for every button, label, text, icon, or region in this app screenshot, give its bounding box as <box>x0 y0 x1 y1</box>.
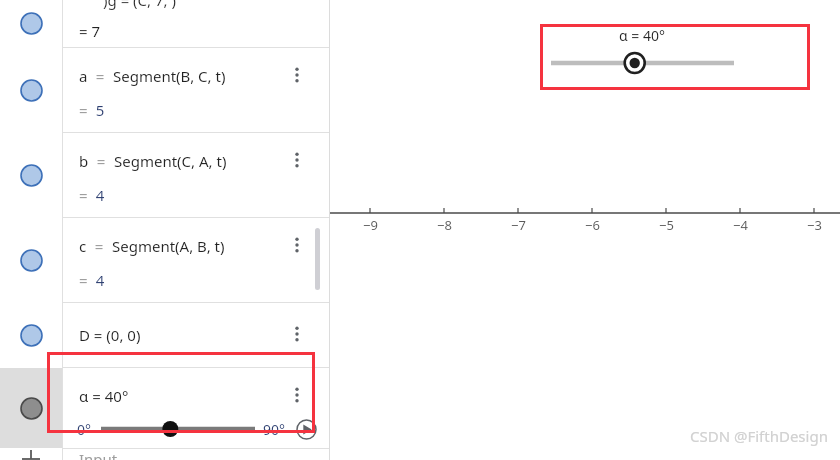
staticText: = 7 <box>79 21 101 41</box>
other: Add <box>0 449 62 460</box>
staticText: 4 <box>88 270 105 290</box>
button[interactable]: Toggle visibility <box>0 48 62 132</box>
staticText: D = (0, 0) <box>79 325 141 345</box>
staticText: = <box>87 236 112 256</box>
staticText: Segment(B, C, t) <box>113 66 226 86</box>
staticText: CSDN @FifthDesign <box>690 426 828 446</box>
staticText: 4 <box>88 185 105 205</box>
staticText: Input... <box>79 449 130 460</box>
staticText: )g = (C, 7, ) <box>103 0 177 10</box>
button[interactable]: Toggle visibility <box>0 133 62 217</box>
staticText: −8 <box>437 216 452 234</box>
staticText: −6 <box>585 216 600 234</box>
staticText: Segment(C, A, t) <box>114 151 227 171</box>
staticText: Segment(A, B, t) <box>112 236 225 256</box>
staticText: −5 <box>659 216 674 234</box>
button[interactable]: Toggle visibility <box>0 0 62 47</box>
staticText: −4 <box>733 216 748 234</box>
button[interactable]: More options <box>284 62 310 88</box>
staticText: = <box>79 270 88 290</box>
staticText: = <box>79 185 88 205</box>
staticText: 90° <box>263 420 286 439</box>
staticText: −9 <box>363 216 378 234</box>
button[interactable]: More options <box>284 321 310 347</box>
staticText: c <box>79 236 87 256</box>
button[interactable]: More options <box>284 147 310 173</box>
button[interactable]: More options <box>284 382 310 408</box>
button[interactable]: More options <box>284 232 310 258</box>
button[interactable]: Toggle visibility <box>0 218 62 302</box>
staticText: = <box>79 100 88 120</box>
staticText: −3 <box>807 216 822 234</box>
button[interactable]: Toggle visibility <box>0 368 62 448</box>
button[interactable]: Play animation <box>294 417 318 441</box>
staticText: = <box>89 151 114 171</box>
staticText: = <box>88 66 113 86</box>
staticText: a <box>79 66 88 86</box>
staticText: b <box>79 151 89 171</box>
button[interactable]: Add <box>0 449 330 460</box>
staticText: 5 <box>88 100 105 120</box>
button[interactable]: Toggle visibility <box>0 303 62 367</box>
staticText: α = 40° <box>79 386 129 406</box>
staticText: 0° <box>77 420 91 439</box>
staticText: α = 40° <box>619 26 666 45</box>
staticText: −7 <box>511 216 526 234</box>
